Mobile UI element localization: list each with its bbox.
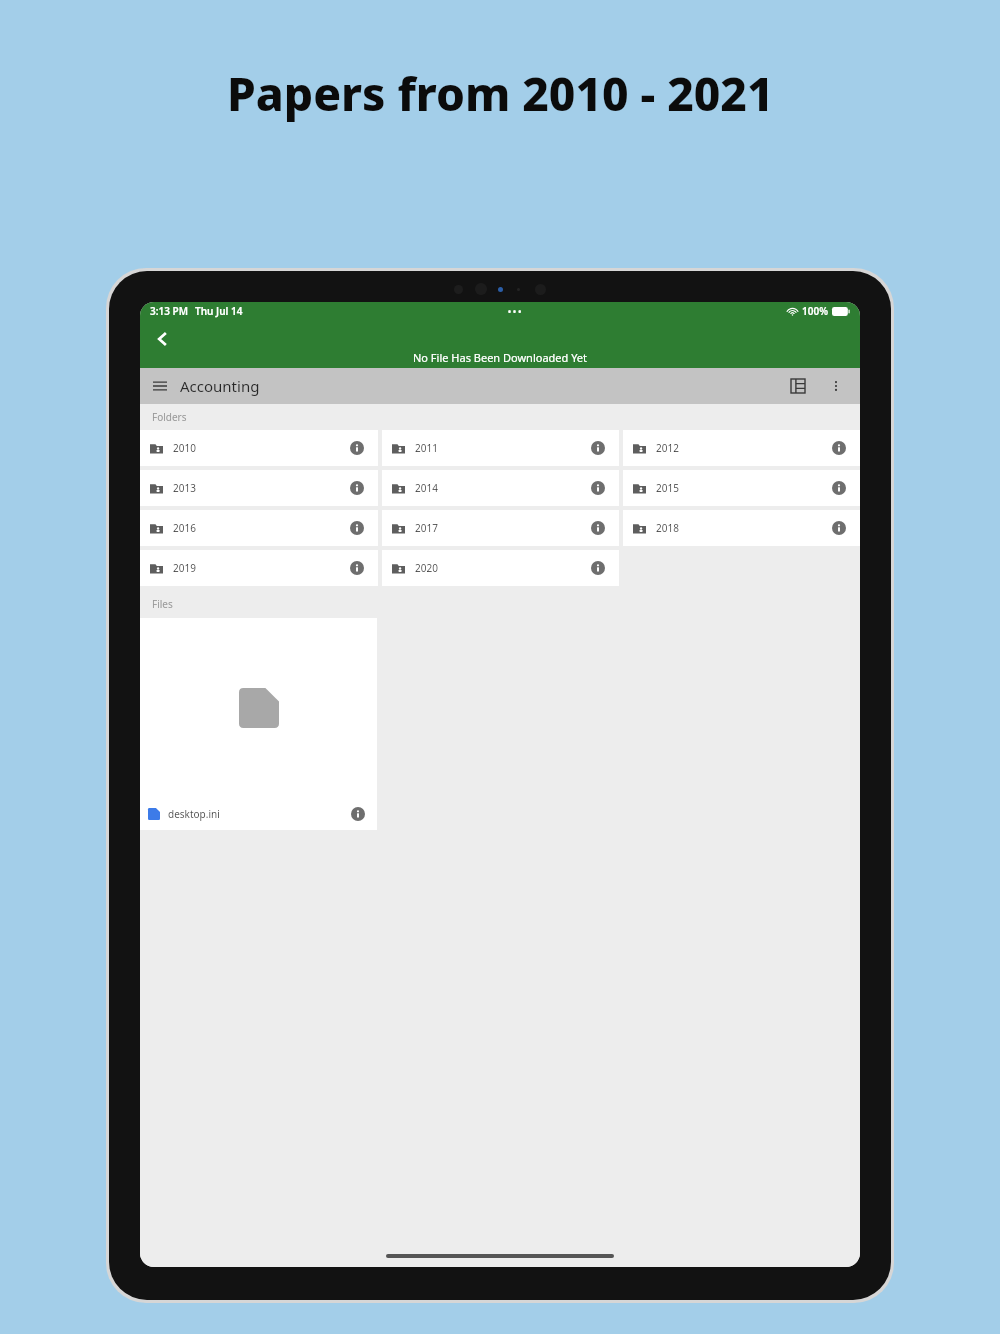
staticText: 2010 <box>173 441 196 455</box>
button[interactable]: Info <box>828 477 850 499</box>
staticText: No File Has Been Downloaded Yet <box>413 350 588 365</box>
button[interactable]: Info <box>346 557 368 579</box>
button[interactable]: Info <box>587 557 609 579</box>
button[interactable]: 2016 <box>140 510 378 546</box>
button[interactable]: Info <box>587 517 609 539</box>
button[interactable]: Back <box>146 322 180 356</box>
staticText: 2012 <box>656 441 679 455</box>
staticText: Papers from 2010 - 2021 <box>227 62 774 125</box>
button[interactable]: Info <box>346 517 368 539</box>
staticText: 2019 <box>173 561 196 575</box>
button[interactable]: 2014 <box>382 470 619 506</box>
button[interactable]: 2013 <box>140 470 378 506</box>
button[interactable]: desktop.ini <box>140 618 377 830</box>
staticText: 2020 <box>415 561 438 575</box>
button[interactable]: Info <box>346 437 368 459</box>
staticText: 2014 <box>415 481 438 495</box>
button[interactable]: 2018 <box>623 510 860 546</box>
button[interactable]: 2011 <box>382 430 619 466</box>
button[interactable]: 2010 <box>140 430 378 466</box>
staticText: 2013 <box>173 481 196 495</box>
staticText: Thu Jul 14 <box>195 304 243 318</box>
button[interactable]: 2017 <box>382 510 619 546</box>
staticText: 100% <box>802 304 828 318</box>
staticText: 2017 <box>415 521 438 535</box>
button[interactable]: Info <box>828 437 850 459</box>
button[interactable]: Switch view <box>784 372 812 400</box>
staticText: Files <box>152 597 173 611</box>
button[interactable]: More options <box>822 372 850 400</box>
staticText: • • • <box>508 306 522 317</box>
staticText: 2016 <box>173 521 196 535</box>
button[interactable]: 2012 <box>623 430 860 466</box>
button[interactable]: Menu <box>147 373 173 399</box>
staticText: 2018 <box>656 521 679 535</box>
button[interactable]: Info <box>347 803 369 825</box>
staticText: 3:13 PM <box>150 304 188 318</box>
staticText: desktop.ini <box>168 807 220 821</box>
button[interactable]: Info <box>587 437 609 459</box>
button[interactable]: Info <box>587 477 609 499</box>
staticText: 2011 <box>415 441 438 455</box>
button[interactable]: Info <box>346 477 368 499</box>
staticText: 2015 <box>656 481 679 495</box>
staticText: Accounting <box>180 376 260 396</box>
button[interactable]: 2020 <box>382 550 619 586</box>
button[interactable]: 2015 <box>623 470 860 506</box>
button[interactable]: Info <box>828 517 850 539</box>
button[interactable]: 2019 <box>140 550 378 586</box>
staticText: Folders <box>152 410 187 424</box>
